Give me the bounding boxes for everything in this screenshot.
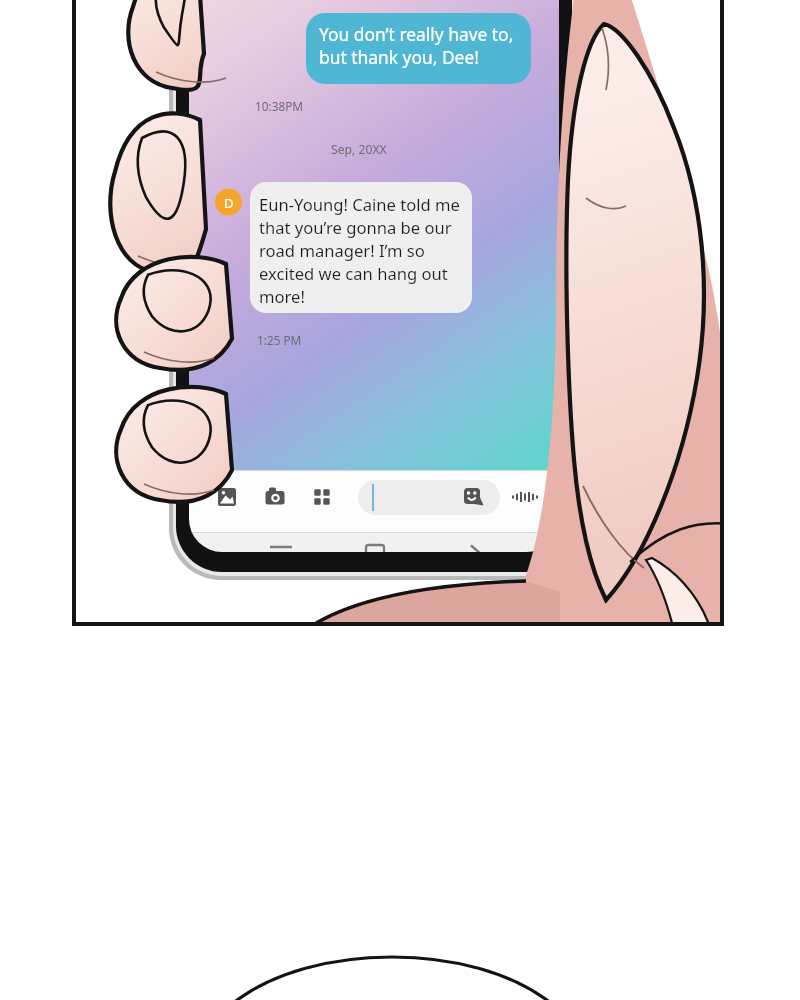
button[interactable]: Comic panel: a hand holding a phone show… — [0, 0, 800, 1000]
